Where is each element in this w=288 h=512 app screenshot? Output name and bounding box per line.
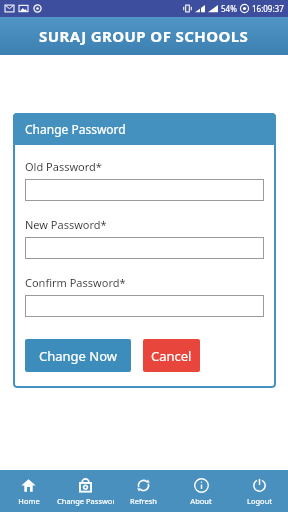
staticText: Change Password [25,121,126,137]
button[interactable] [25,179,264,201]
staticText: 54% [221,3,237,14]
staticText: Logout [247,496,272,506]
button[interactable]: Cancel [143,339,200,372]
staticText: Old Password* [25,159,102,174]
button[interactable] [25,295,264,317]
staticText: New Password* [25,217,107,232]
button[interactable]: About [172,470,230,512]
button[interactable]: Logout [230,470,288,512]
button[interactable]: Refresh [114,470,172,512]
staticText: Change Password [57,496,114,506]
staticText: Change Now [39,347,117,365]
staticText: About [190,496,212,506]
staticText: Home [18,496,40,506]
button[interactable] [25,237,264,259]
staticText: Refresh [130,496,157,506]
button[interactable]: Change Now [25,339,131,372]
staticText: SURAJ GROUP OF SCHOOLS [39,26,249,46]
button[interactable]: Home [0,470,57,512]
staticText: Cancel [151,347,192,365]
button[interactable]: Change Password [57,470,114,512]
staticText: 16:09:37 [252,3,284,14]
staticText: Confirm Password* [25,275,126,290]
